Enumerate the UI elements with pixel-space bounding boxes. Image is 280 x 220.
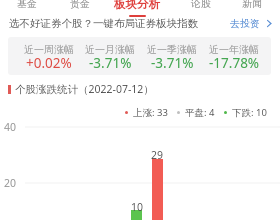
- button[interactable]: 下跌: 10: [224, 106, 267, 119]
- staticText: 平盘: 4: [185, 106, 215, 119]
- button[interactable]: 选不好证券个股？一键布局证券板块指数: [0, 17, 280, 30]
- button[interactable]: 近一年涨幅: [203, 43, 265, 74]
- button[interactable]: 基金: [7, 0, 47, 15]
- staticText: 板块分析: [114, 0, 160, 11]
- button[interactable]: 近一月涨幅: [79, 43, 141, 74]
- button[interactable]: 个股涨跌统计（2022-07-12）: [8, 82, 154, 96]
- staticText: 论股: [191, 0, 211, 10]
- staticText: 近一周涨幅: [24, 43, 74, 56]
- button[interactable]: 板块分析: [107, 0, 167, 15]
- button[interactable]: 论股: [181, 0, 221, 15]
- staticText: -3.71%: [89, 54, 132, 72]
- staticText: 近一年涨幅: [209, 43, 259, 56]
- staticText: +0.02%: [26, 54, 72, 72]
- staticText: -17.78%: [209, 54, 260, 72]
- staticText: 近一季涨幅: [147, 43, 197, 56]
- staticText: 下跌: 10: [232, 106, 267, 119]
- staticText: 近一月涨幅: [85, 43, 135, 56]
- button[interactable]: 近一季涨幅: [141, 43, 203, 74]
- staticText: 去投资: [230, 17, 260, 30]
- button[interactable]: 去投资: [230, 17, 267, 30]
- staticText: 新闻: [242, 0, 262, 10]
- staticText: 基金: [17, 0, 37, 10]
- staticText: 上涨: 33: [133, 106, 168, 119]
- staticText: 20: [4, 176, 17, 190]
- button[interactable]: 贵金: [60, 0, 100, 15]
- staticText: 个股涨跌统计（2022-07-12）: [15, 82, 154, 96]
- button[interactable]: 新闻: [232, 0, 272, 15]
- button[interactable]: 上涨: 33: [125, 106, 168, 119]
- staticText: 10: [131, 200, 144, 214]
- button[interactable]: 平盘: 4: [177, 106, 215, 119]
- staticText: 29: [151, 148, 164, 162]
- staticText: 贵金: [70, 0, 90, 10]
- button[interactable]: 近一周涨幅: [18, 43, 79, 74]
- staticText: -3.71%: [151, 54, 194, 72]
- staticText: 40: [4, 120, 17, 134]
- staticText: 选不好证券个股？一键布局证券板块指数: [9, 17, 198, 30]
